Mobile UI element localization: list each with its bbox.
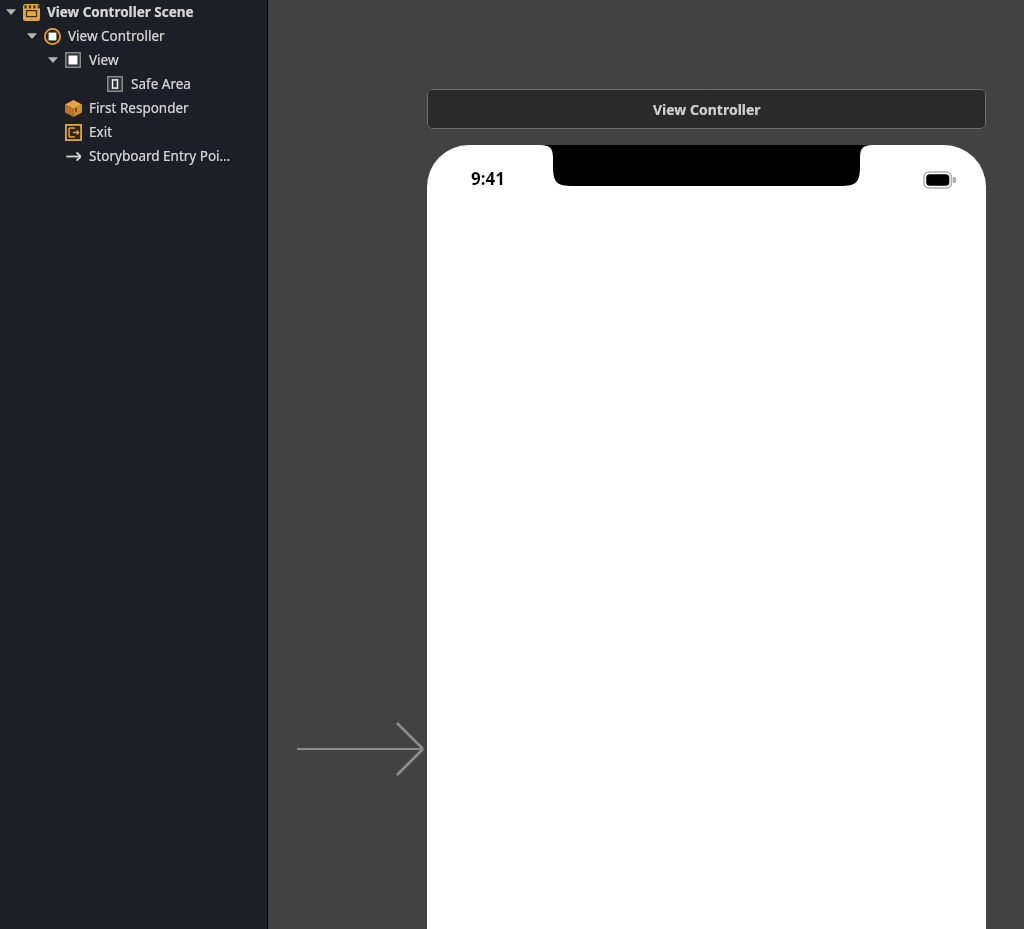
button[interactable]: View Controller	[0, 24, 267, 48]
button[interactable]: Exit	[0, 120, 267, 144]
other: Storyboard entry point	[297, 723, 423, 775]
staticText: Exit	[89, 123, 113, 141]
staticText: First Responder	[89, 99, 189, 117]
staticText: Safe Area	[131, 75, 191, 93]
staticText: View Controller Scene	[47, 3, 194, 21]
button[interactable]: Safe Area	[0, 72, 267, 96]
button[interactable]: Storyboard Entry Poi…	[0, 144, 267, 168]
button[interactable]: View	[0, 48, 267, 72]
staticText: 9:41	[471, 167, 505, 190]
button[interactable]: First Responder	[0, 96, 267, 120]
button[interactable]: View Controller Scene	[0, 0, 267, 24]
staticText: View Controller	[653, 100, 761, 119]
staticText: View Controller	[68, 27, 165, 45]
button[interactable]: View Controller	[427, 89, 986, 129]
staticText: Storyboard Entry Poi…	[89, 147, 231, 165]
staticText: View	[89, 51, 119, 69]
